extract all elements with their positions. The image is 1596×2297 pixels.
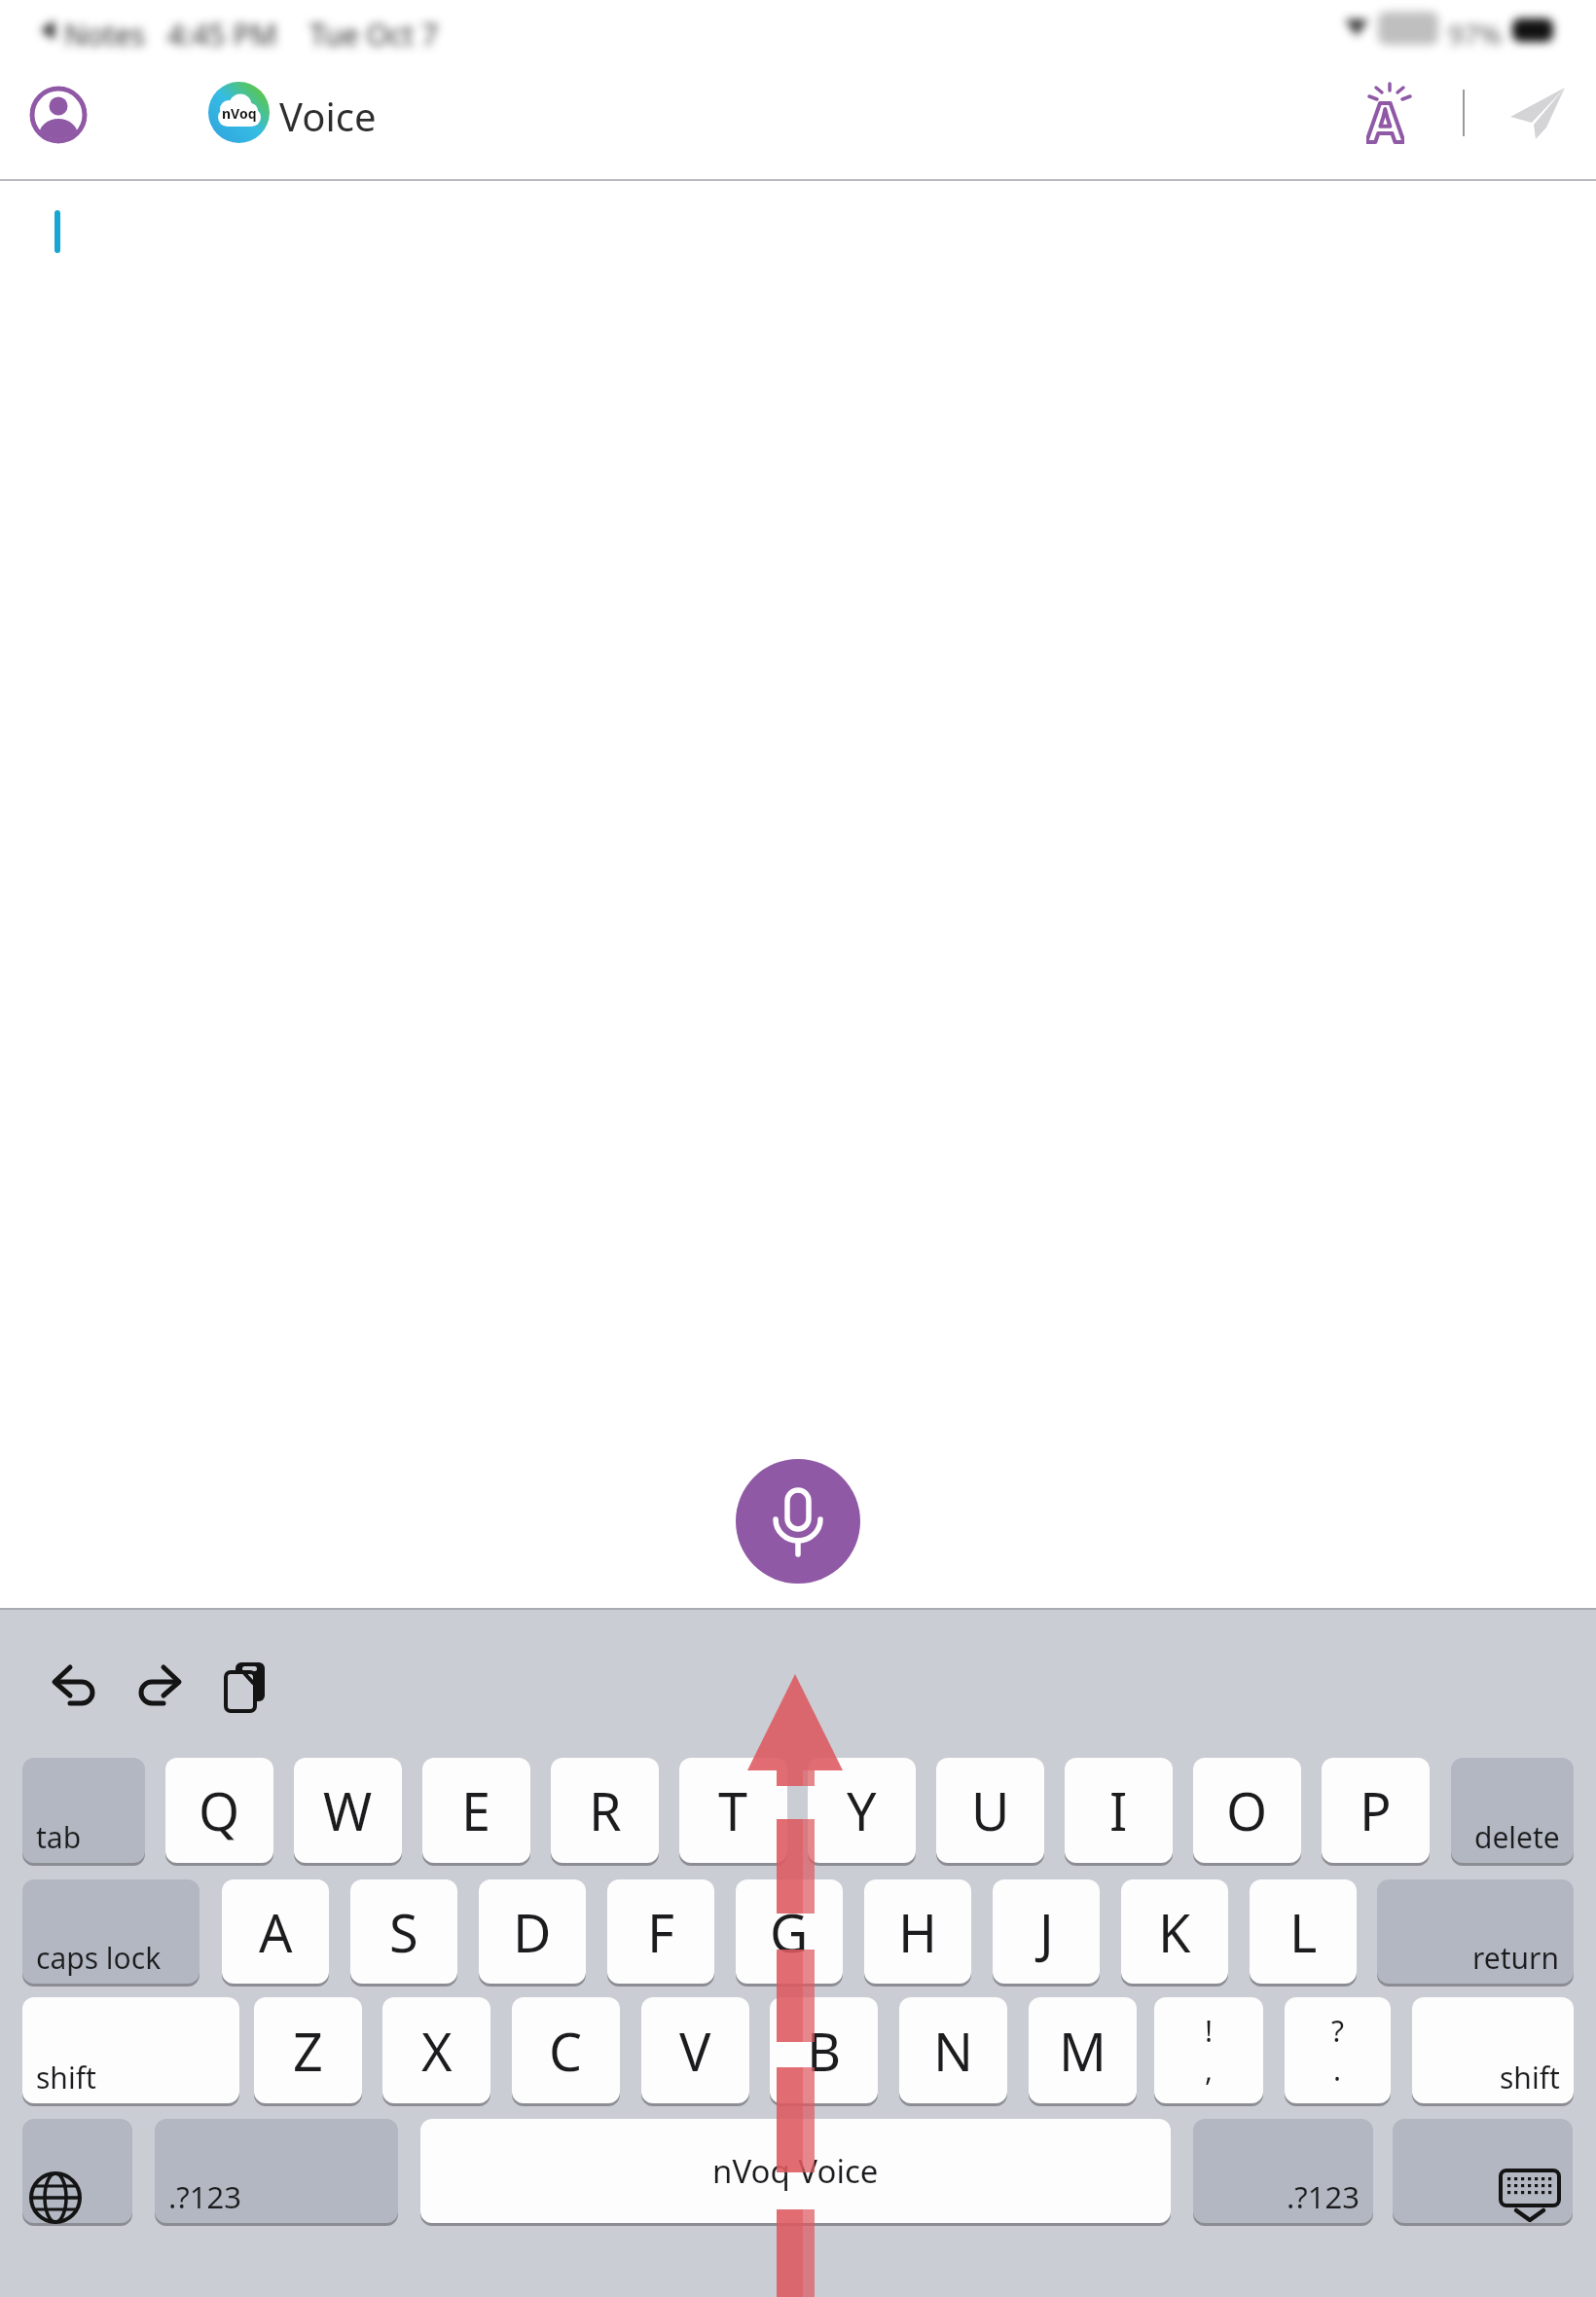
staticText: ! xyxy=(1205,2011,1214,2051)
staticText: A xyxy=(1366,84,1404,152)
button[interactable]: E xyxy=(422,1758,530,1863)
staticText: M xyxy=(1059,2015,1106,2087)
button[interactable]: T xyxy=(679,1758,787,1863)
staticText: F xyxy=(647,1896,675,1968)
staticText: O xyxy=(1226,1774,1268,1846)
staticText: Q xyxy=(199,1774,240,1846)
staticText: return xyxy=(1472,1938,1560,1978)
staticText: shift xyxy=(36,2058,96,2097)
button[interactable] xyxy=(22,2119,132,2223)
button[interactable] xyxy=(128,1660,189,1721)
button[interactable]: W xyxy=(294,1758,402,1863)
button[interactable]: .?123 xyxy=(155,2119,398,2223)
staticText: K xyxy=(1158,1896,1191,1968)
staticText: U xyxy=(971,1774,1010,1846)
button[interactable] xyxy=(1504,82,1570,144)
button[interactable]: C xyxy=(512,1997,620,2103)
staticText: Tue Oct 7 xyxy=(309,15,439,55)
staticText: B xyxy=(807,2015,842,2087)
button[interactable]: return xyxy=(1377,1879,1574,1984)
staticText: delete xyxy=(1474,1817,1560,1857)
staticText: R xyxy=(589,1774,622,1846)
button[interactable]: B xyxy=(770,1997,878,2103)
button[interactable]: N xyxy=(899,1997,1007,2103)
staticText: , xyxy=(1205,2050,1214,2090)
staticText: X xyxy=(421,2015,453,2087)
button[interactable]: X xyxy=(382,1997,490,2103)
staticText: 97% xyxy=(1448,16,1503,53)
button[interactable]: U xyxy=(936,1758,1044,1863)
staticText: nVoq xyxy=(222,104,257,123)
button[interactable]: J xyxy=(993,1879,1100,1984)
staticText: caps lock xyxy=(36,1938,162,1978)
staticText: C xyxy=(549,2015,583,2087)
button[interactable] xyxy=(736,1459,860,1584)
staticText: shift xyxy=(1500,2058,1560,2097)
button[interactable]: G xyxy=(736,1879,843,1984)
button[interactable]: ? xyxy=(1285,1997,1391,2103)
staticText: S xyxy=(389,1896,418,1968)
staticText: V xyxy=(679,2015,711,2087)
button[interactable]: ! xyxy=(1154,1997,1263,2103)
button[interactable]: H xyxy=(864,1879,971,1984)
staticText: D xyxy=(513,1896,552,1968)
button[interactable]: D xyxy=(479,1879,586,1984)
staticText: Voice xyxy=(279,90,377,142)
button[interactable]: delete xyxy=(1451,1758,1574,1863)
button[interactable] xyxy=(29,86,88,144)
staticText: W xyxy=(323,1774,373,1846)
button[interactable]: Y xyxy=(808,1758,916,1863)
button[interactable]: P xyxy=(1322,1758,1430,1863)
staticText: Y xyxy=(847,1774,877,1846)
button[interactable]: R xyxy=(551,1758,659,1863)
staticText: P xyxy=(1360,1774,1392,1846)
staticText: 4:45 PM xyxy=(167,15,277,55)
staticText: Z xyxy=(293,2015,323,2087)
staticText: .?123 xyxy=(168,2176,241,2217)
staticText: J xyxy=(1039,1896,1054,1968)
button[interactable]: Z xyxy=(254,1997,362,2103)
button[interactable]: K xyxy=(1121,1879,1228,1984)
staticText: . xyxy=(1333,2050,1342,2090)
staticText: H xyxy=(898,1896,938,1968)
staticText: N xyxy=(933,2015,974,2087)
button[interactable] xyxy=(216,1655,278,1719)
button[interactable]: A xyxy=(222,1879,329,1984)
button[interactable]: A xyxy=(1355,78,1423,146)
staticText: L xyxy=(1289,1896,1318,1968)
staticText: A xyxy=(259,1896,293,1968)
button[interactable]: shift xyxy=(1412,1997,1574,2103)
button[interactable] xyxy=(1393,2119,1573,2223)
button[interactable]: S xyxy=(350,1879,457,1984)
staticText: T xyxy=(718,1774,748,1846)
staticText: G xyxy=(770,1896,809,1968)
staticText: I xyxy=(1109,1774,1128,1846)
button[interactable]: tab xyxy=(22,1758,145,1863)
button[interactable]: shift xyxy=(22,1997,239,2103)
button[interactable]: M xyxy=(1029,1997,1137,2103)
button[interactable]: F xyxy=(607,1879,714,1984)
button[interactable]: L xyxy=(1250,1879,1357,1984)
button[interactable]: .?123 xyxy=(1193,2119,1373,2223)
staticText: E xyxy=(461,1774,491,1846)
button[interactable]: Q xyxy=(165,1758,273,1863)
staticText: tab xyxy=(36,1817,82,1857)
staticText: ? xyxy=(1331,2011,1345,2051)
button[interactable]: O xyxy=(1193,1758,1301,1863)
button[interactable]: nVoq Voice xyxy=(420,2119,1171,2223)
staticText: nVoq Voice xyxy=(712,2149,879,2193)
button[interactable]: V xyxy=(641,1997,749,2103)
staticText: Notes xyxy=(64,15,146,55)
button[interactable]: caps lock xyxy=(22,1879,199,1984)
button[interactable]: I xyxy=(1065,1758,1173,1863)
button[interactable] xyxy=(45,1660,105,1721)
staticText: .?123 xyxy=(1287,2176,1360,2217)
